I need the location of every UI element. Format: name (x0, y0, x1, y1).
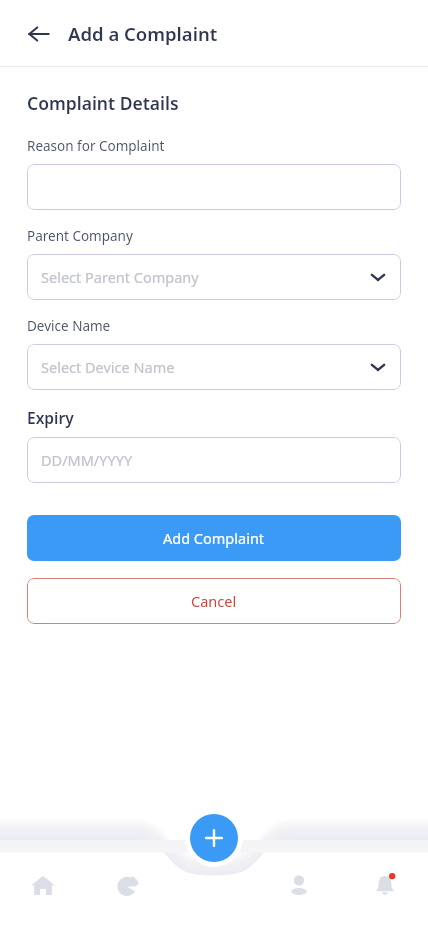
button[interactable]: Profile (256, 844, 342, 926)
staticText: Select Device Name (41, 357, 175, 377)
staticText: Add Complaint (163, 528, 265, 548)
button[interactable]: Statistics (85, 844, 170, 926)
staticText: Expiry (27, 407, 74, 428)
button[interactable]: Add (190, 814, 238, 862)
button[interactable]: Select Parent Company (27, 254, 401, 300)
button[interactable]: Add Complaint (27, 515, 401, 561)
staticText: DD/MM/YYYY (41, 450, 133, 470)
button[interactable]: Select Device Name (27, 344, 401, 390)
button[interactable]: Notifications (342, 844, 428, 926)
staticText: Add a Complaint (68, 21, 218, 46)
staticText: Cancel (191, 591, 237, 611)
button[interactable]: Cancel (27, 578, 401, 624)
button[interactable] (27, 164, 401, 210)
staticText: Select Parent Company (41, 267, 199, 287)
staticText: Device Name (27, 317, 111, 335)
staticText: Parent Company (27, 227, 133, 245)
staticText: Reason for Complaint (27, 137, 165, 155)
staticText: Complaint Details (27, 91, 179, 115)
button[interactable]: DD/MM/YYYY (27, 437, 401, 483)
button[interactable]: Home (0, 844, 85, 926)
button[interactable]: Back (22, 17, 56, 51)
